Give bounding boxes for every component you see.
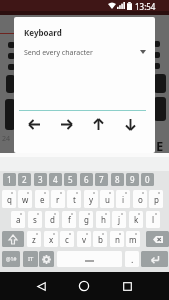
button[interactable]: y <box>84 190 98 208</box>
button[interactable] <box>73 276 95 296</box>
button[interactable]: w <box>18 190 32 208</box>
staticText: j <box>118 214 121 225</box>
button[interactable] <box>19 113 50 135</box>
staticText: s <box>33 214 37 225</box>
staticText: a <box>16 214 21 225</box>
button[interactable]: o <box>133 190 147 208</box>
staticText: 0 <box>145 174 150 185</box>
button[interactable]: q <box>2 190 16 208</box>
button[interactable] <box>82 113 114 135</box>
button[interactable]: f <box>62 211 76 228</box>
staticText: E <box>156 137 164 155</box>
staticText: e <box>40 194 45 205</box>
staticText: c <box>65 234 69 245</box>
button[interactable]: b <box>93 231 107 247</box>
button[interactable]: 2 <box>18 173 31 186</box>
button[interactable]: z <box>27 231 41 247</box>
button[interactable] <box>141 251 168 267</box>
button[interactable]: v <box>77 231 91 247</box>
button[interactable] <box>114 113 146 135</box>
button[interactable]: j <box>112 211 126 228</box>
button[interactable] <box>116 276 138 296</box>
button[interactable]: @1# <box>2 251 20 267</box>
button[interactable]: g <box>79 211 93 228</box>
staticText: r <box>56 194 60 205</box>
button[interactable]: 9 <box>126 173 139 186</box>
button[interactable]: t <box>67 190 81 208</box>
staticText: 2 <box>22 174 27 185</box>
staticText: @1# <box>6 256 17 263</box>
staticText: o <box>138 194 143 205</box>
staticText: f <box>68 214 71 225</box>
staticText: 24 <box>2 134 11 144</box>
staticText: 3 <box>38 174 43 185</box>
staticText: 4 <box>53 174 58 185</box>
staticText: z <box>32 234 36 245</box>
staticText: d <box>50 214 55 225</box>
button[interactable]: r <box>51 190 65 208</box>
button[interactable]: x <box>44 231 58 247</box>
staticText: Send every character <box>24 48 93 58</box>
button[interactable] <box>30 276 52 296</box>
staticText: IT <box>28 255 34 263</box>
button[interactable]: p <box>149 190 163 208</box>
staticText: n <box>115 234 120 245</box>
button[interactable]: h <box>96 211 110 228</box>
staticText: 5 <box>68 174 73 185</box>
staticText: p <box>154 194 159 205</box>
button[interactable]: 6 <box>80 173 93 186</box>
button[interactable]: d <box>45 211 59 228</box>
button[interactable] <box>39 251 54 267</box>
staticText: k <box>134 214 139 225</box>
staticText: 7 <box>99 174 104 185</box>
staticText: h <box>101 214 106 225</box>
button[interactable]: IT <box>23 251 38 267</box>
staticText: 13:54 <box>135 1 156 12</box>
button[interactable]: l <box>146 211 160 228</box>
button[interactable]: 0 <box>141 173 154 186</box>
staticText: 8 <box>115 174 120 185</box>
button[interactable]: a <box>11 211 25 228</box>
button[interactable]: e <box>35 190 49 208</box>
staticText: i <box>122 194 125 205</box>
button[interactable]: 1 <box>3 173 16 186</box>
staticText: m <box>129 234 137 245</box>
button[interactable] <box>2 231 24 247</box>
staticText: 9 <box>130 174 135 185</box>
button[interactable]: n <box>110 231 124 247</box>
button[interactable]: m <box>126 231 140 247</box>
staticText: q <box>7 194 12 205</box>
button[interactable]: 5 <box>64 173 77 186</box>
button[interactable] <box>50 113 82 135</box>
button[interactable]: 7 <box>95 173 108 186</box>
button[interactable]: Send every character <box>22 45 148 59</box>
button[interactable]: 3 <box>34 173 47 186</box>
staticText: Keyboard <box>24 27 62 38</box>
staticText: 6 <box>84 174 89 185</box>
button[interactable]: 4 <box>49 173 62 186</box>
staticText: . <box>131 253 134 265</box>
staticText: t <box>73 194 76 205</box>
staticText: y <box>89 194 94 205</box>
button[interactable] <box>57 251 122 267</box>
staticText: v <box>82 234 87 245</box>
staticText: w <box>22 194 29 205</box>
button[interactable]: 8 <box>111 173 124 186</box>
staticText: 1 <box>7 174 12 185</box>
staticText: b <box>98 234 103 245</box>
staticText: l <box>152 214 155 225</box>
staticText: u <box>105 194 110 205</box>
button[interactable]: u <box>100 190 114 208</box>
button[interactable]: i <box>116 190 130 208</box>
button[interactable]: . <box>125 251 139 267</box>
button[interactable]: k <box>129 211 143 228</box>
button[interactable] <box>146 231 169 247</box>
staticText: x <box>49 234 54 245</box>
button[interactable]: s <box>28 211 42 228</box>
button[interactable]: c <box>60 231 74 247</box>
staticText: g <box>84 214 89 225</box>
